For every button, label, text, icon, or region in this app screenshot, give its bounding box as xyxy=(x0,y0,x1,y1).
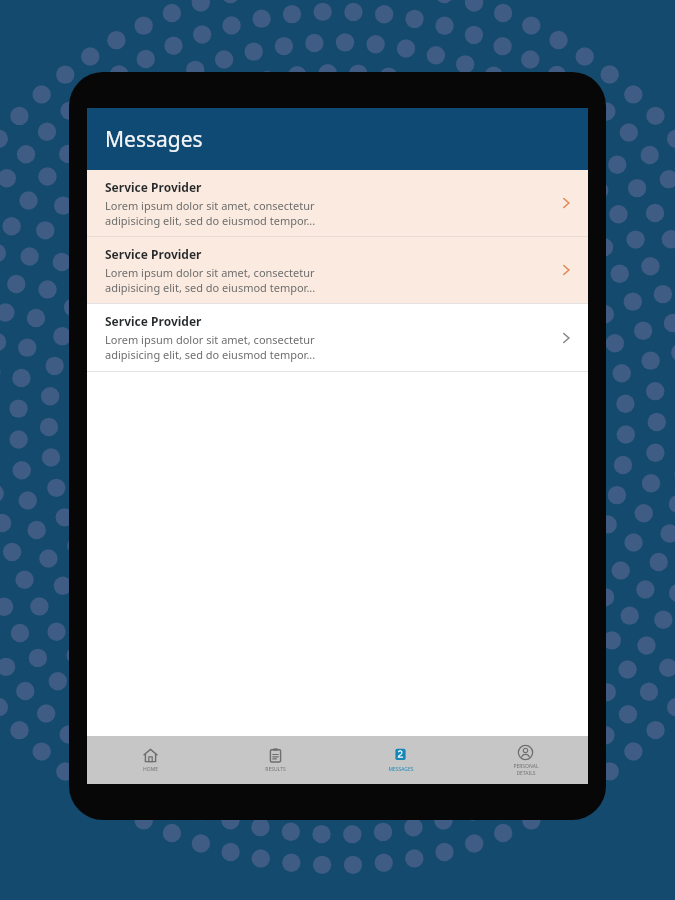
button[interactable]: PERSONAL DETAILS xyxy=(463,736,588,784)
staticText: MESSAGES xyxy=(388,766,414,773)
staticText: Lorem ipsum dolor sit amet, consectetur xyxy=(105,332,315,347)
button[interactable]: Service Provider xyxy=(87,170,588,236)
staticText: adipisicing elit, sed do eiusmod tempor.… xyxy=(105,347,316,362)
staticText: Messages xyxy=(105,125,203,154)
staticText: RESULTS xyxy=(265,766,286,773)
staticText: Service Provider xyxy=(105,179,202,195)
staticText: adipisicing elit, sed do eiusmod tempor.… xyxy=(105,213,316,228)
staticText: PERSONAL DETAILS xyxy=(513,763,539,776)
staticText: adipisicing elit, sed do eiusmod tempor.… xyxy=(105,280,316,295)
staticText: Service Provider xyxy=(105,246,202,262)
button[interactable]: MESSAGES xyxy=(338,736,463,784)
staticText: Service Provider xyxy=(105,313,202,329)
button[interactable]: HOME xyxy=(87,736,213,784)
staticText: Lorem ipsum dolor sit amet, consectetur xyxy=(105,265,315,280)
staticText: Lorem ipsum dolor sit amet, consectetur xyxy=(105,198,315,213)
button[interactable]: Service Provider xyxy=(87,237,588,303)
button[interactable]: Service Provider xyxy=(87,304,588,371)
staticText: HOME xyxy=(143,766,158,773)
button[interactable]: RESULTS xyxy=(213,736,338,784)
